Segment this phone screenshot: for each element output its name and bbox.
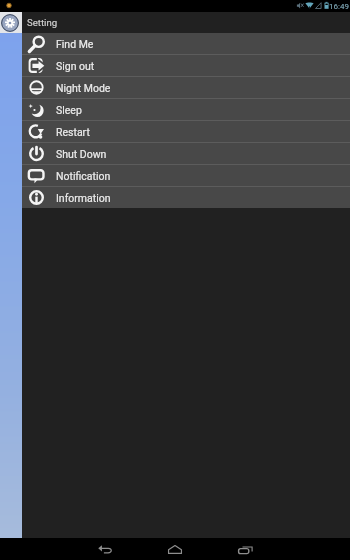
- staticText: Sleep: [56, 104, 82, 116]
- button[interactable]: Recent apps: [210, 538, 280, 560]
- staticText: Setting: [27, 17, 58, 28]
- button[interactable]: Sleep: [22, 99, 350, 120]
- button[interactable]: Night Mode: [22, 77, 350, 98]
- staticText: Night Mode: [56, 82, 111, 94]
- button[interactable]: App icon: [0, 12, 22, 33]
- staticText: Sign out: [56, 60, 95, 72]
- button[interactable]: Shut Down: [22, 143, 350, 164]
- button[interactable]: Sign out: [22, 55, 350, 76]
- staticText: 16:49: [329, 2, 349, 11]
- staticText: Restart: [56, 126, 90, 138]
- staticText: Notification: [56, 170, 111, 182]
- button[interactable]: Back: [70, 538, 140, 560]
- staticText: Find Me: [56, 38, 94, 50]
- button[interactable]: Notification: [22, 165, 350, 186]
- button[interactable]: Find Me: [22, 33, 350, 54]
- button[interactable]: Home: [140, 538, 210, 560]
- button[interactable]: Restart: [22, 121, 350, 142]
- button[interactable]: Information: [22, 187, 350, 208]
- staticText: Information: [56, 192, 111, 204]
- staticText: Shut Down: [56, 148, 107, 160]
